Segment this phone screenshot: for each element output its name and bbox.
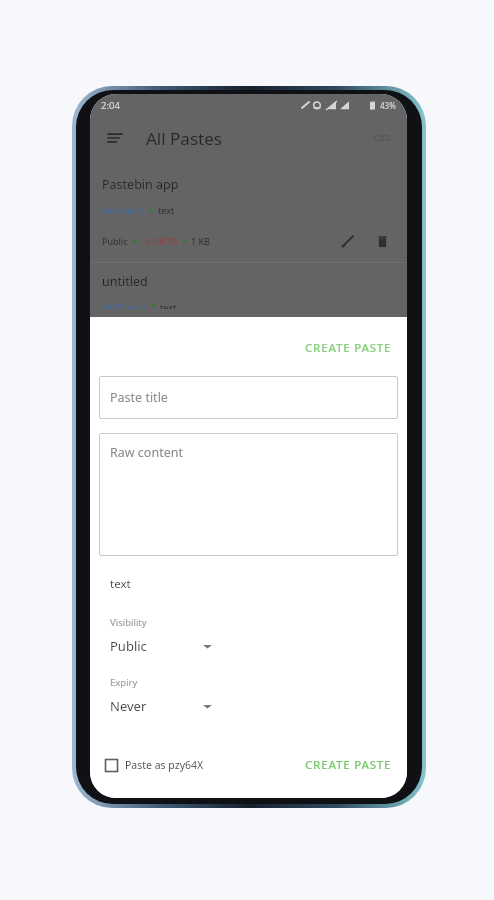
staticText: All Pastes (146, 127, 222, 150)
staticText: Public (110, 637, 147, 655)
staticText: Expiry (110, 676, 138, 689)
button[interactable]: untitled (90, 263, 407, 317)
button[interactable]: CREATE PASTE (299, 754, 398, 776)
staticText: CREATE PASTE (305, 757, 392, 773)
button[interactable]: Paste title (99, 376, 398, 419)
staticText: Visibility (110, 616, 147, 629)
staticText: 1619FTG (141, 235, 178, 247)
staticText: Pastebin app (102, 176, 179, 193)
button[interactable]: Open navigation menu (98, 121, 132, 155)
staticText: text (158, 204, 175, 216)
button[interactable]: Raw content (99, 433, 398, 556)
staticText: untitled (102, 273, 148, 290)
button[interactable]: CREATE PASTE (299, 337, 398, 359)
button[interactable]: Paste as pzy64X (99, 754, 210, 776)
button[interactable]: Delete paste (369, 228, 395, 254)
staticText: 2:04 (101, 99, 120, 112)
staticText: Paste as pzy64X (125, 758, 204, 772)
staticText: text (160, 301, 177, 309)
button[interactable]: Edit paste (335, 228, 361, 254)
staticText: 8vFmavKS (102, 204, 145, 216)
button[interactable]: Public (110, 635, 230, 657)
staticText: Never (110, 697, 147, 715)
staticText: 43% (380, 100, 396, 111)
button[interactable]: Never (110, 695, 230, 717)
staticText: oijKQoegn (102, 301, 147, 309)
button[interactable]: Pastebin app (90, 166, 407, 262)
staticText: Paste title (110, 389, 168, 406)
staticText: 1 KB (191, 235, 210, 247)
staticText: Raw content (110, 444, 183, 461)
staticText: Public (102, 235, 128, 247)
staticText: CREATE PASTE (305, 340, 392, 356)
staticText: text (110, 576, 131, 592)
